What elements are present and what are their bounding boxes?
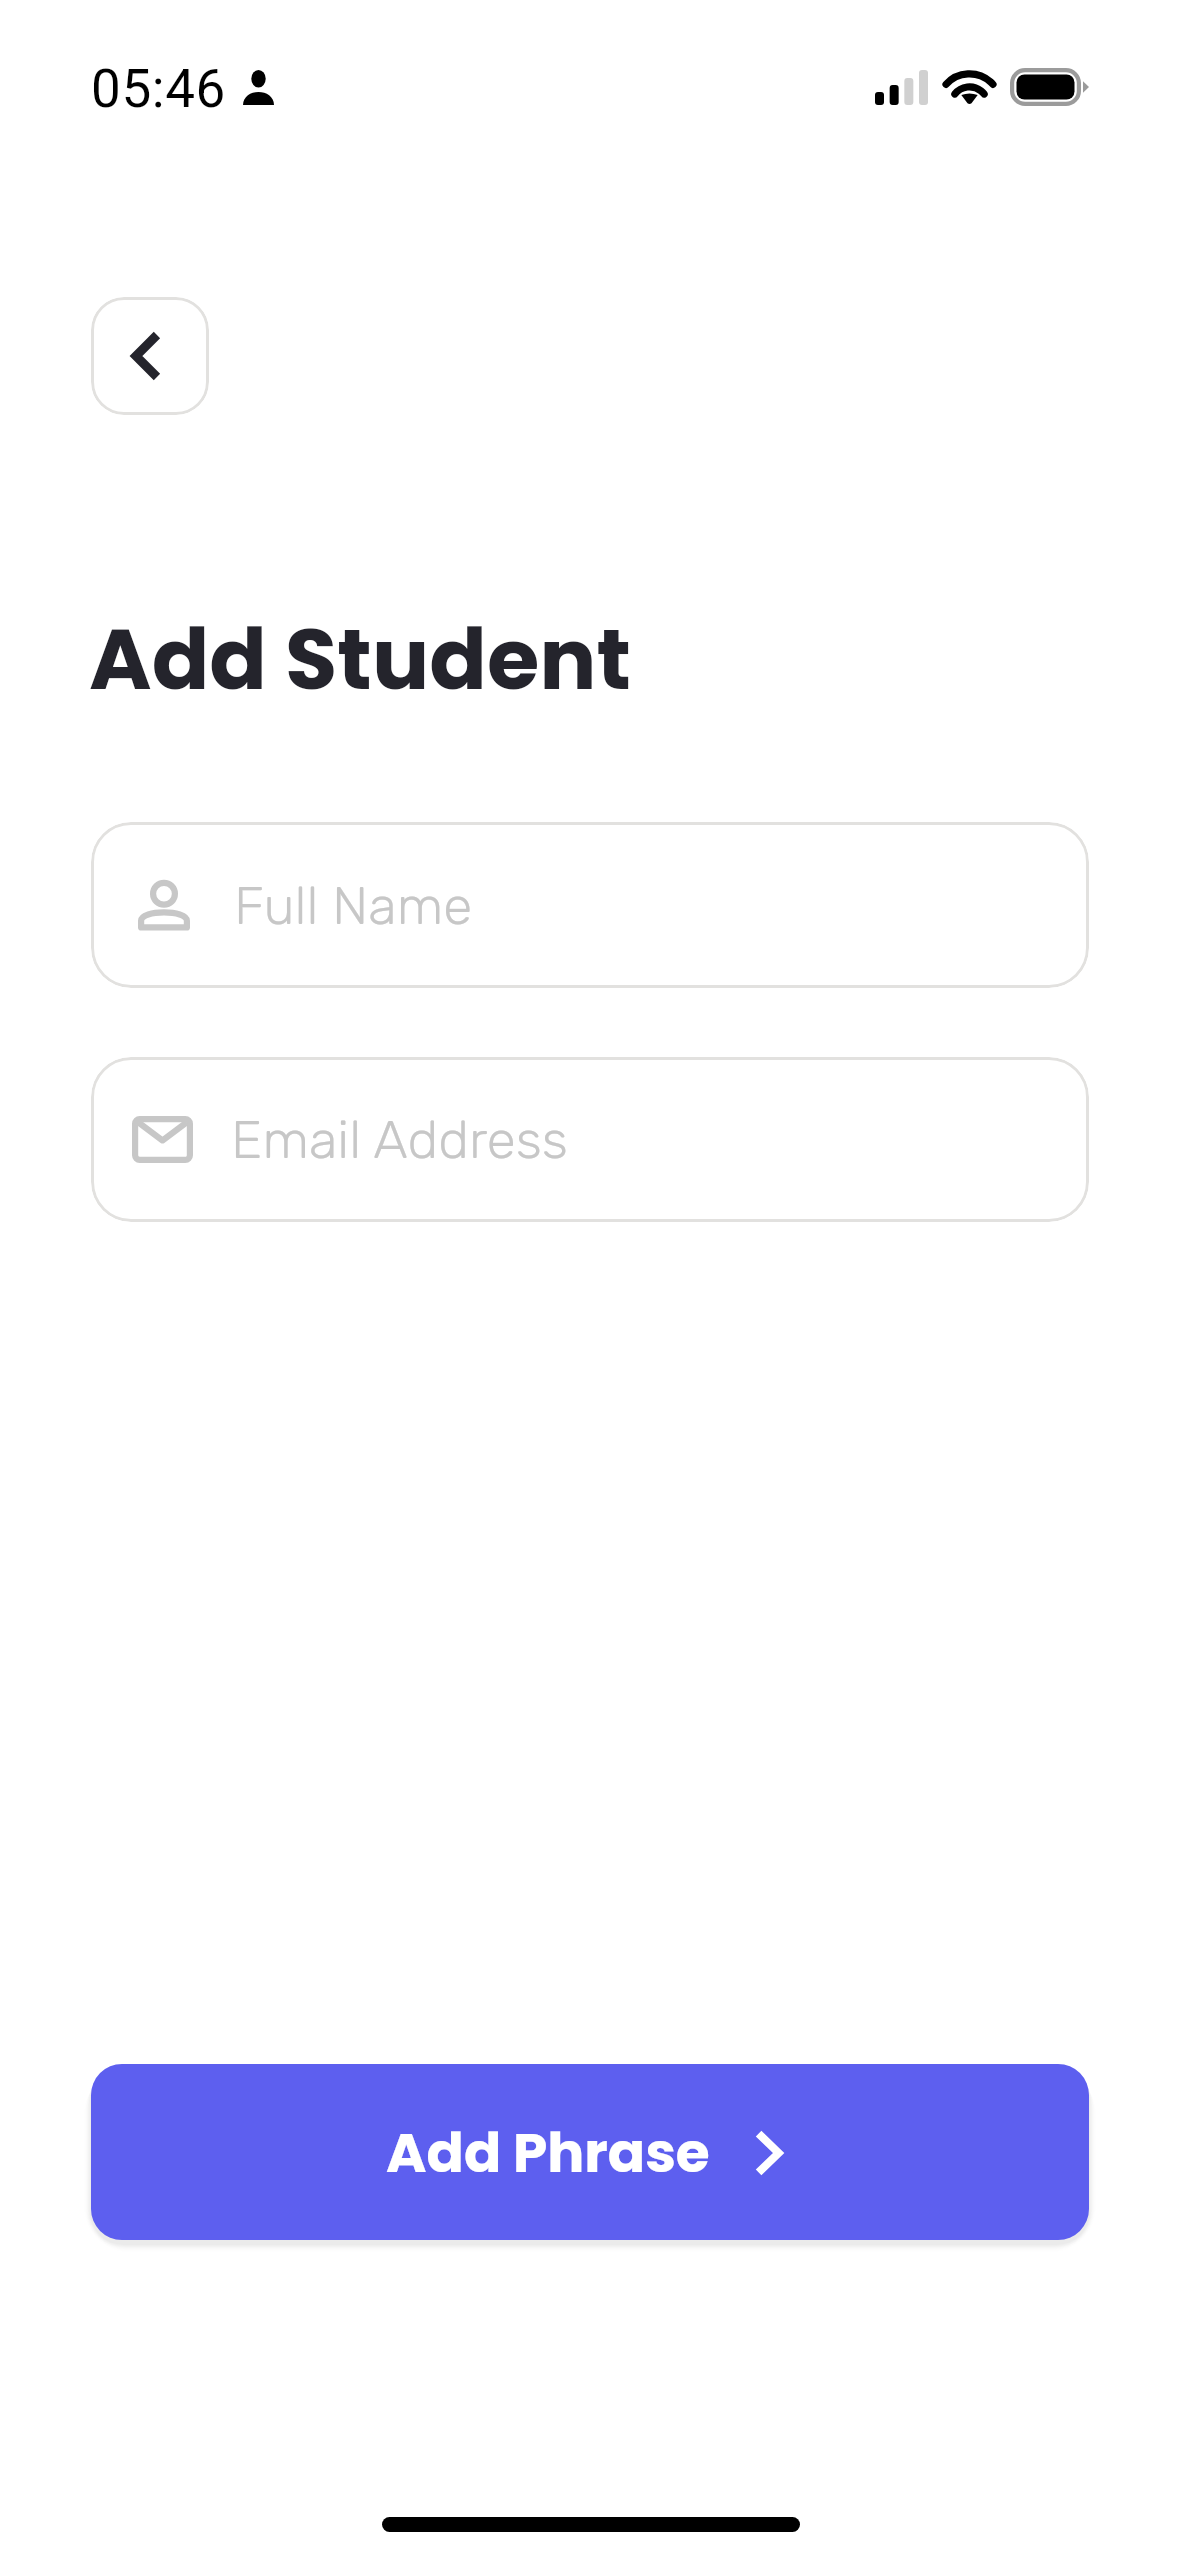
- staticText: Add Phrase: [386, 2114, 710, 2191]
- staticText: 05:46: [91, 58, 226, 120]
- staticText: Email Address: [231, 1108, 568, 1171]
- button[interactable]: Add Phrase: [91, 2064, 1089, 2240]
- staticText: Full Name: [234, 874, 473, 937]
- button[interactable]: Back: [91, 297, 209, 415]
- button[interactable]: Full Name: [91, 822, 1089, 988]
- staticText: Add Student: [89, 600, 632, 719]
- button[interactable]: Email Address: [91, 1057, 1089, 1222]
